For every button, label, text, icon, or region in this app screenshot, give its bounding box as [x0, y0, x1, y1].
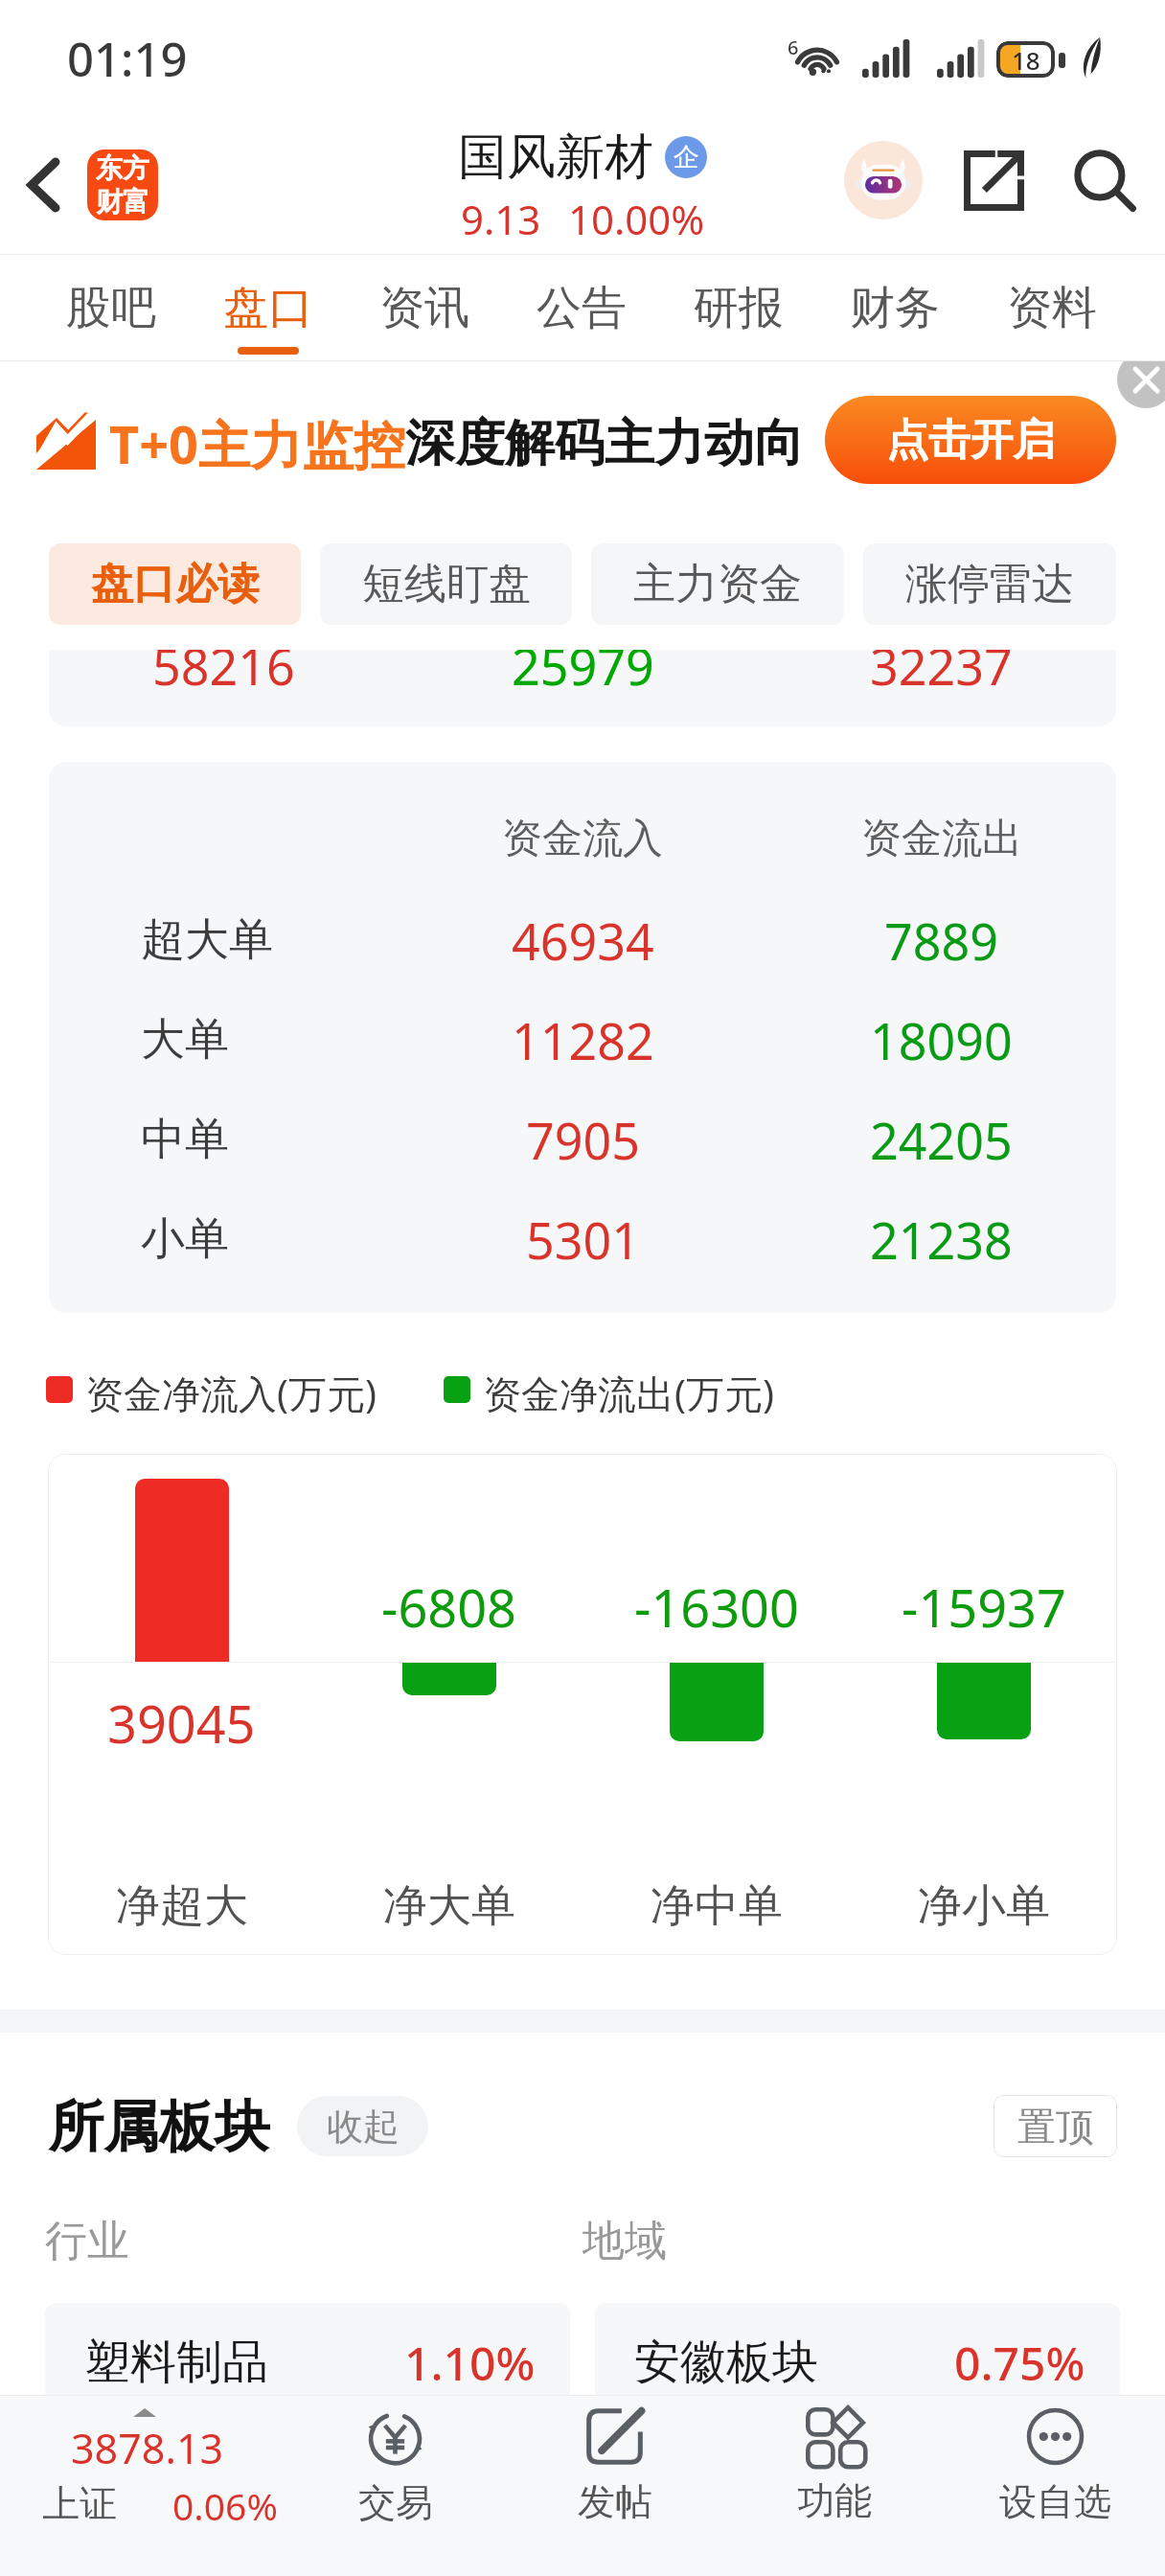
button[interactable]: Back [1, 143, 85, 227]
button[interactable]: 短线盯盘 [320, 543, 572, 625]
staticText: 0.75% [954, 2332, 1085, 2394]
button[interactable]: 公告 [537, 254, 627, 361]
button[interactable]: 点击开启 [825, 396, 1116, 484]
button[interactable]: 盘口必读 [49, 543, 301, 625]
button[interactable]: 设自选 [945, 2396, 1165, 2576]
staticText: 上证 [42, 2480, 117, 2527]
staticText: 收起 [327, 2104, 400, 2150]
button[interactable]: 安徽板块 [595, 2303, 1120, 2427]
staticText: 32237 [870, 650, 1013, 700]
button[interactable]: AI assistant [844, 141, 923, 219]
staticText: 3878.13 [71, 2420, 224, 2476]
staticText: 主力资金 [633, 558, 802, 610]
staticText: 股吧 [66, 280, 156, 336]
staticText: 盘口必读 [91, 558, 260, 610]
staticText: 资料 [1007, 280, 1097, 336]
staticText: 资金净流出(万元) [483, 1367, 774, 1419]
staticText: 18090 [870, 1006, 1013, 1073]
button[interactable]: 塑料制品 [45, 2303, 570, 2427]
staticText: 所属板块 [48, 2092, 270, 2159]
button[interactable]: 研报 [694, 254, 784, 361]
staticText: 资讯 [379, 280, 469, 336]
staticText: 0.06% [172, 2480, 278, 2531]
staticText: 大单 [141, 1012, 229, 1068]
button[interactable]: Search [1065, 141, 1144, 219]
button[interactable]: 3878.13 [0, 2396, 286, 2576]
button[interactable]: East Money home [87, 149, 158, 220]
staticText: -6808 [381, 1572, 516, 1643]
button[interactable]: 资料 [1007, 254, 1097, 361]
staticText: 资金流入 [502, 814, 663, 864]
staticText: 1.10% [404, 2332, 536, 2394]
staticText: 5301 [526, 1206, 640, 1273]
staticText: 58216 [152, 650, 295, 700]
staticText: T+0主力监控 [109, 408, 405, 479]
staticText: 财富 [96, 185, 149, 218]
staticText: 中单 [141, 1112, 229, 1167]
staticText: 东方 [96, 151, 149, 185]
staticText: 21238 [870, 1206, 1013, 1273]
button[interactable]: 财务 [850, 254, 940, 361]
staticText: 10.00% [568, 192, 705, 246]
staticText: 塑料制品 [84, 2334, 268, 2391]
staticText: 置顶 [1017, 2103, 1094, 2150]
staticText: 财务 [850, 280, 940, 336]
staticText: 盘口 [223, 280, 313, 336]
staticText: 公告 [537, 280, 627, 336]
button[interactable]: 资讯 [379, 254, 469, 361]
staticText: 资金流出 [861, 814, 1022, 864]
button[interactable]: 涨停雷达 [863, 543, 1116, 625]
button[interactable]: Close ad [1117, 361, 1165, 408]
button[interactable]: 收起 [297, 2096, 428, 2156]
staticText: 01:19 [67, 27, 188, 91]
staticText: 设自选 [999, 2478, 1111, 2525]
staticText: 7905 [526, 1106, 640, 1173]
button[interactable]: 交易 [286, 2396, 505, 2576]
button[interactable]: 主力资金 [591, 543, 844, 625]
staticText: 超大单 [141, 912, 273, 968]
button[interactable]: 置顶 [994, 2095, 1117, 2157]
staticText: 研报 [694, 280, 784, 336]
staticText: 46934 [512, 907, 654, 974]
staticText: 发帖 [578, 2478, 652, 2525]
staticText: 小单 [141, 1211, 229, 1267]
staticText: 9.13 [461, 192, 541, 246]
staticText: 功能 [797, 2477, 872, 2524]
staticText: 净大单 [383, 1878, 515, 1934]
staticText: 深度解码主力动向 [405, 412, 804, 475]
staticText: 净中单 [651, 1878, 783, 1934]
staticText: 资金净流入(万元) [85, 1367, 377, 1419]
staticText: 39045 [107, 1688, 256, 1759]
button[interactable]: 发帖 [505, 2396, 724, 2576]
staticText: 24205 [870, 1106, 1013, 1173]
staticText: 交易 [358, 2479, 433, 2526]
staticText: 11282 [512, 1006, 654, 1073]
staticText: 行业 [45, 2215, 129, 2267]
staticText: 点击开启 [886, 414, 1055, 467]
staticText: 净超大 [116, 1878, 248, 1934]
staticText: 涨停雷达 [905, 558, 1074, 610]
button[interactable]: 股吧 [66, 254, 156, 361]
staticText: 6 [788, 34, 799, 60]
button[interactable]: 功能 [724, 2396, 945, 2576]
staticText: 净小单 [918, 1878, 1050, 1934]
button[interactable]: Share [954, 141, 1033, 219]
staticText: -15937 [902, 1572, 1066, 1643]
button[interactable]: 盘口 [223, 254, 313, 361]
staticText: 企 [674, 141, 699, 173]
staticText: 短线盯盘 [362, 558, 531, 610]
staticText: -16300 [634, 1572, 799, 1643]
staticText: 18 [1012, 43, 1040, 77]
staticText: 国风新材 [458, 126, 653, 188]
staticText: 安徽板块 [634, 2334, 818, 2391]
staticText: 25979 [512, 650, 654, 700]
staticText: 7889 [884, 907, 998, 974]
staticText: 地域 [582, 2215, 667, 2267]
